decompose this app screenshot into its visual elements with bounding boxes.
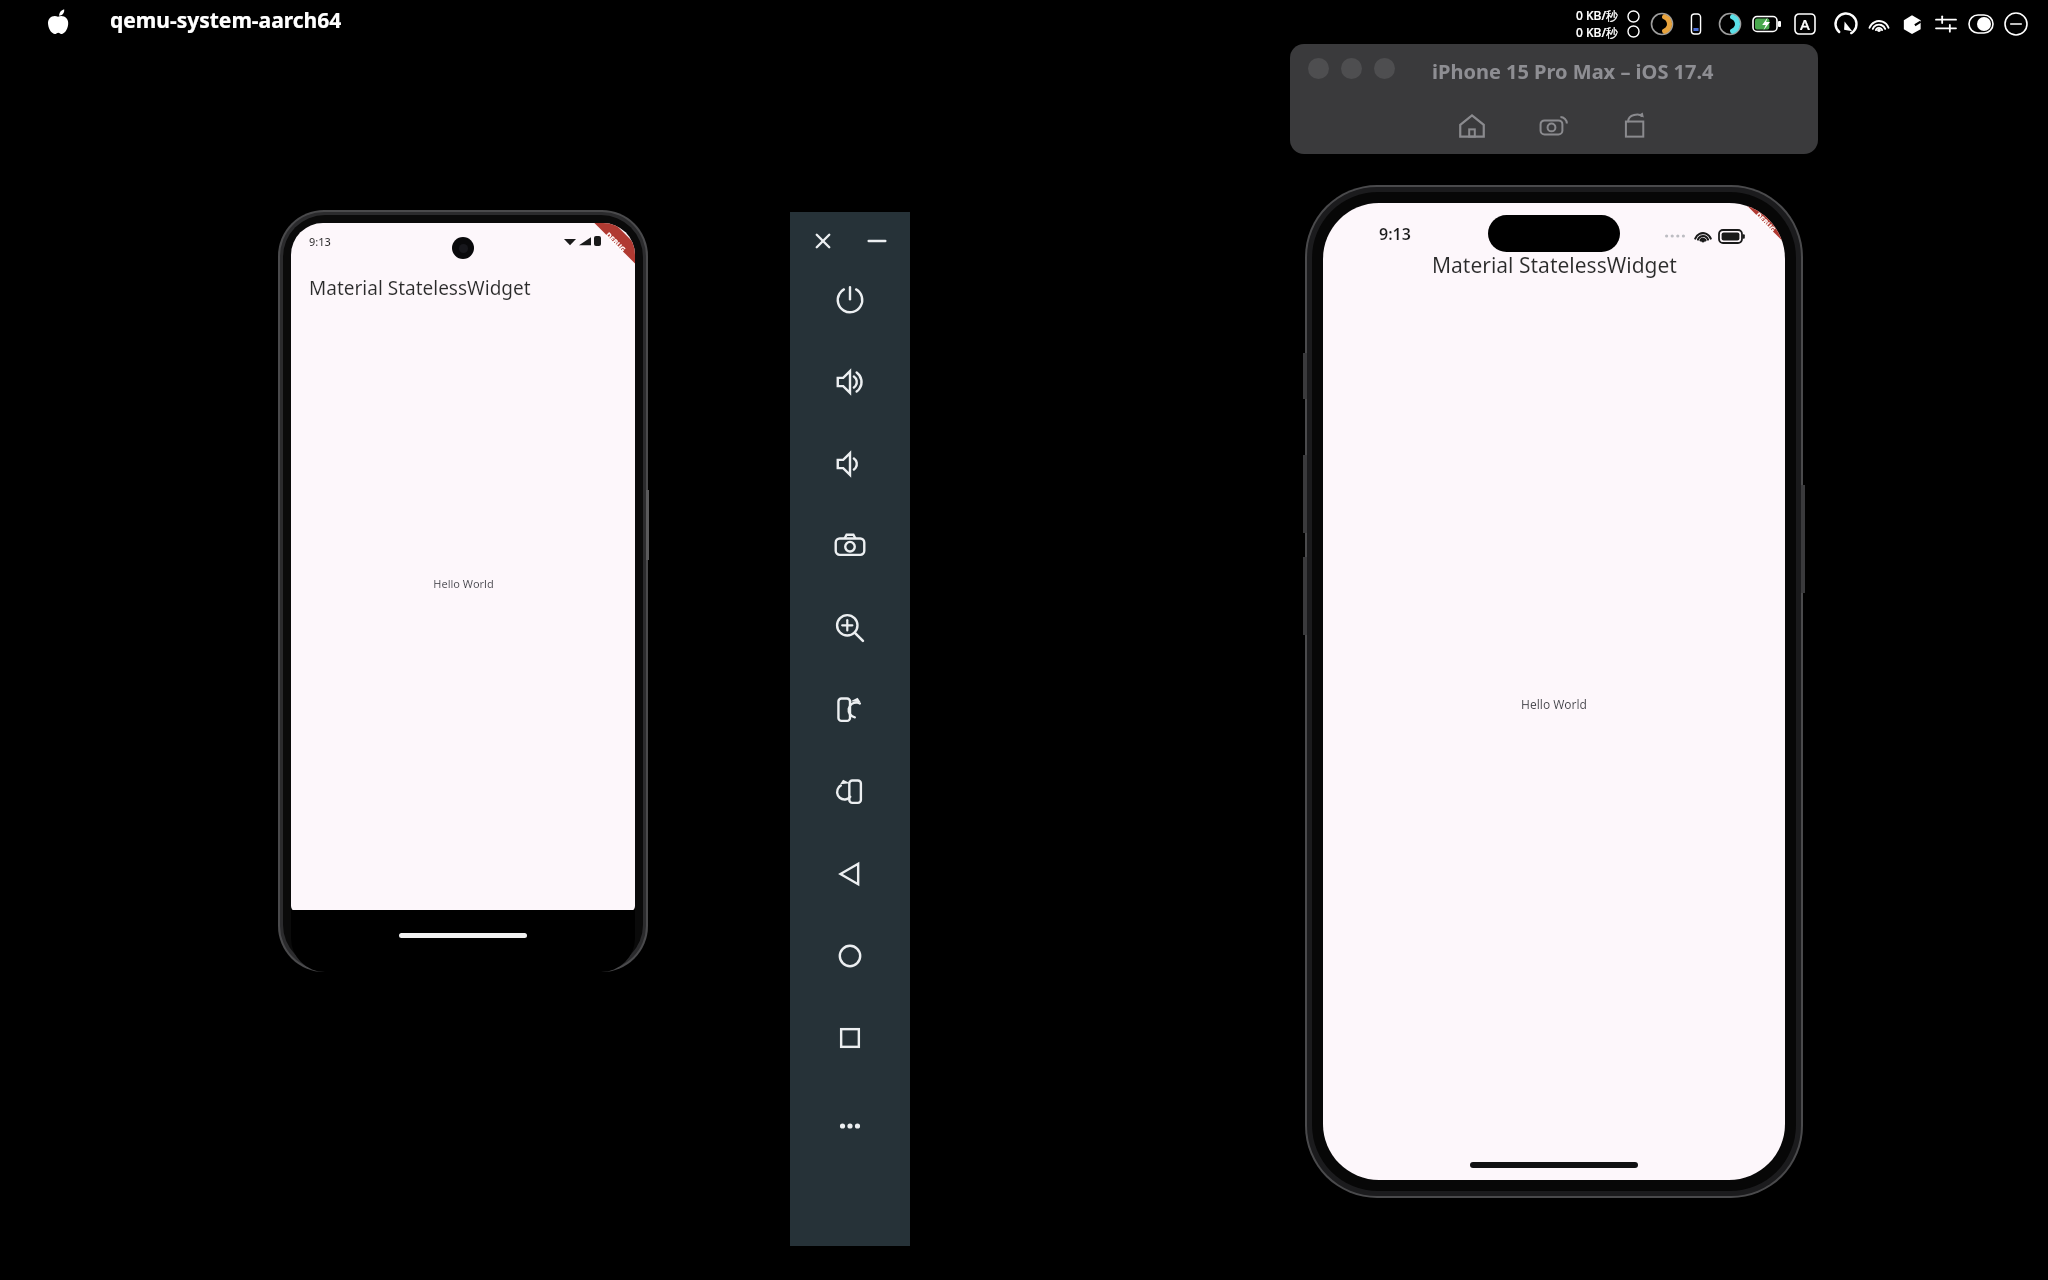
button[interactable]: Screenshot [1534, 106, 1574, 146]
button[interactable]: Minimise [857, 221, 897, 261]
button[interactable]: Control centre [2002, 10, 2030, 38]
button[interactable]: More [826, 1102, 874, 1150]
button[interactable]: Memory [1682, 10, 1710, 38]
button[interactable]: Volume up [826, 358, 874, 406]
button[interactable]: Cloud [1898, 10, 1926, 38]
button[interactable]: Home [826, 932, 874, 980]
button[interactable]: Sound settings [1932, 10, 1960, 38]
button[interactable]: Screenshot [826, 522, 874, 570]
button[interactable]: Rotate right [826, 768, 874, 816]
staticText: Hello World [433, 576, 494, 591]
button[interactable]: Material StatelessWidget [309, 275, 531, 301]
button[interactable]: Back [826, 850, 874, 898]
staticText: 9:13 [309, 234, 331, 249]
button[interactable]: Wi-Fi [1866, 10, 1892, 38]
button[interactable]: Battery charging [1750, 10, 1784, 38]
button[interactable]: Power [826, 276, 874, 324]
button[interactable]: Zoom [1374, 58, 1395, 79]
staticText: iPhone 15 Pro Max – iOS 17.4 [1432, 58, 1714, 85]
button[interactable]: Rotate left [826, 686, 874, 734]
button[interactable]: Zoom [826, 604, 874, 652]
button[interactable]: Home [1452, 106, 1492, 146]
button[interactable]: Disk gauge [1716, 10, 1744, 38]
staticText: DEBUG [603, 231, 628, 255]
button[interactable]: Volume down [826, 440, 874, 488]
button[interactable]: Close [1308, 58, 1329, 79]
button[interactable]: Apple menu [40, 4, 76, 40]
button[interactable]: Recents [826, 1014, 874, 1062]
staticText: 9:13 [1379, 223, 1411, 245]
button[interactable]: qemu-system-aarch64 [110, 6, 342, 35]
button[interactable]: Minimise [1341, 58, 1362, 79]
button[interactable]: Close [803, 221, 843, 261]
staticText: 0 KB/秒 [1576, 24, 1619, 40]
staticText: Hello World [1521, 696, 1587, 712]
staticText: DEBUG [1753, 211, 1778, 235]
button[interactable]: CPU gauge [1648, 10, 1676, 38]
button[interactable]: Input source [1792, 10, 1818, 38]
button[interactable]: Screen recorder [1832, 10, 1860, 38]
button[interactable]: Toggle [1966, 10, 1996, 38]
staticText: 0 KB/秒 [1576, 7, 1619, 23]
staticText: A [1800, 14, 1810, 34]
button[interactable]: Material StatelessWidget [1432, 251, 1677, 280]
button[interactable]: Share [1616, 106, 1656, 146]
